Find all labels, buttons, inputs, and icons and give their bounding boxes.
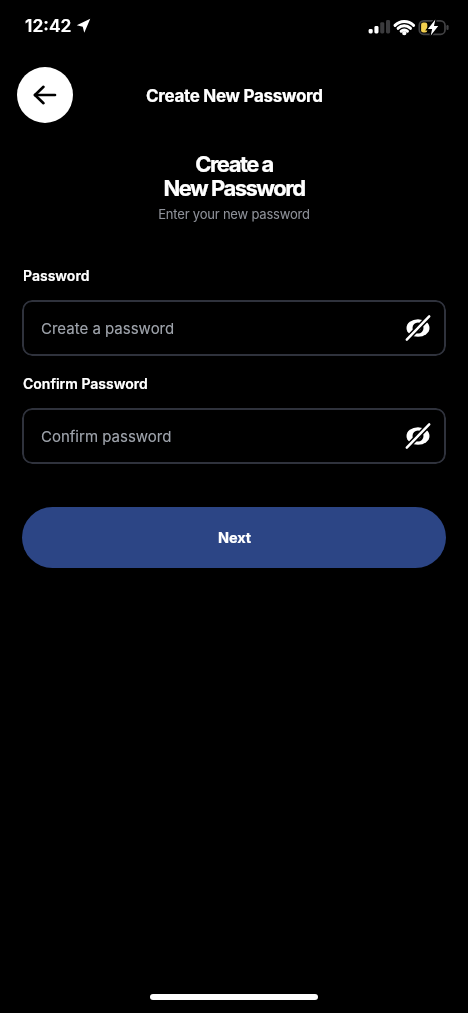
staticText: Password: [23, 267, 90, 284]
button[interactable]: [406, 316, 430, 340]
button[interactable]: Create a password: [22, 300, 446, 356]
button[interactable]: [17, 67, 73, 123]
staticText: Next: [218, 529, 251, 547]
staticText: 12:42: [25, 15, 72, 36]
staticText: Create a password: [41, 319, 175, 337]
staticText: Enter your new password: [0, 206, 468, 222]
staticText: Confirm password: [41, 427, 172, 445]
staticText: Create a New Password: [0, 151, 468, 202]
button[interactable]: Next: [22, 507, 446, 568]
button[interactable]: [406, 424, 430, 448]
button[interactable]: Confirm password: [22, 408, 446, 464]
staticText: Create New Password: [146, 86, 323, 107]
staticText: Confirm Password: [23, 375, 148, 392]
